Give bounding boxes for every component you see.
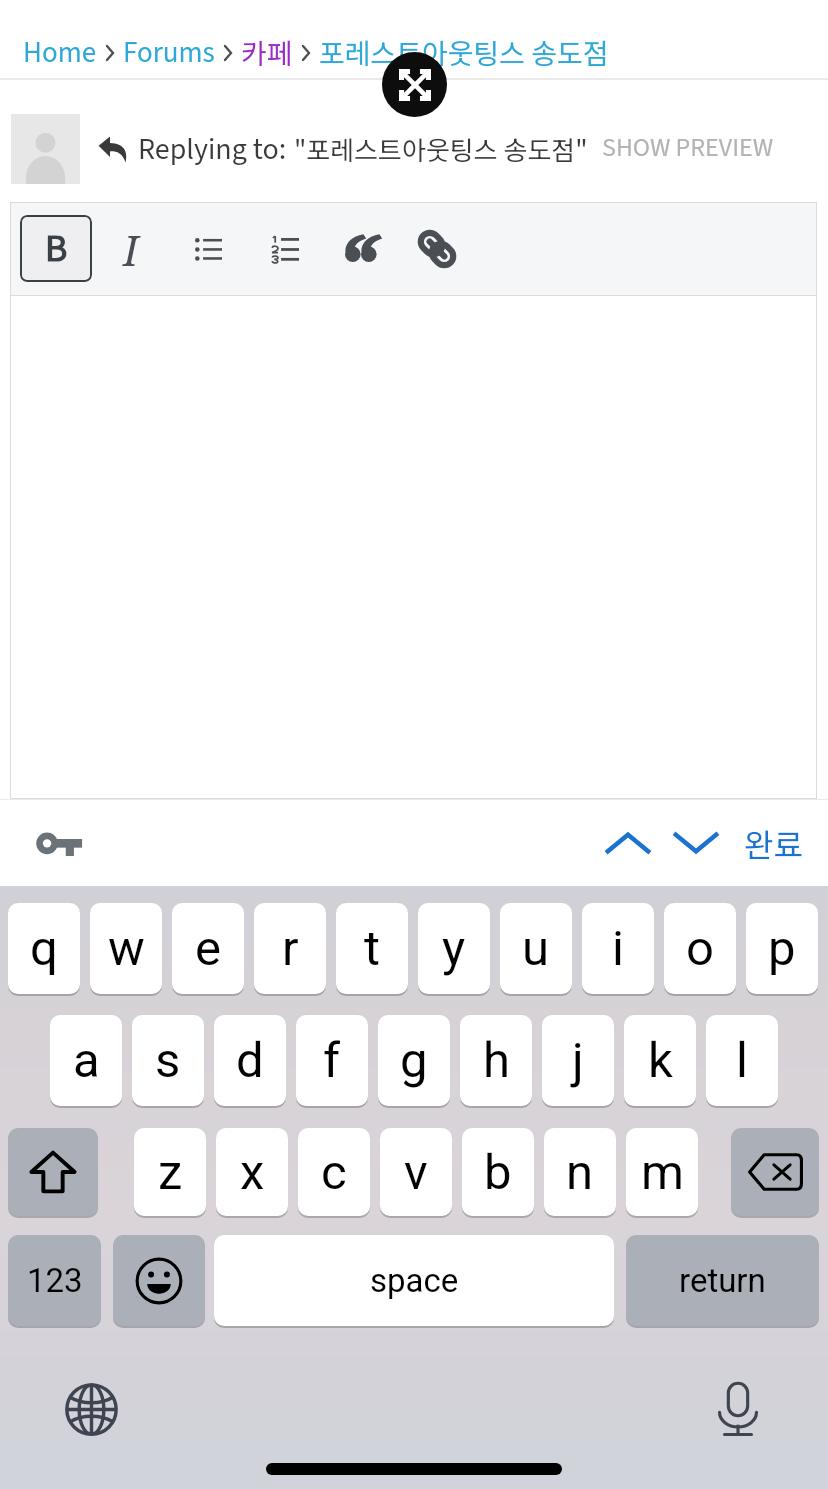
button[interactable]: Change language bbox=[55, 1373, 127, 1445]
button[interactable]: r bbox=[254, 903, 326, 994]
button[interactable]: m bbox=[626, 1128, 698, 1216]
button[interactable]: l bbox=[706, 1015, 778, 1106]
button[interactable]: 카페 bbox=[241, 28, 293, 77]
button[interactable]: k bbox=[624, 1015, 696, 1106]
button[interactable]: Next field bbox=[664, 811, 728, 875]
staticText: return bbox=[679, 1261, 766, 1300]
staticText: h bbox=[483, 1032, 510, 1089]
button[interactable]: Home bbox=[23, 28, 97, 77]
button[interactable]: Passwords bbox=[25, 810, 95, 880]
button[interactable]: q bbox=[8, 903, 80, 994]
staticText: f bbox=[323, 1032, 341, 1089]
button[interactable] bbox=[169, 209, 247, 289]
button[interactable]: s bbox=[132, 1015, 204, 1106]
staticText: e bbox=[195, 920, 221, 977]
button[interactable]: Emoji bbox=[113, 1235, 205, 1326]
staticText: 카페 bbox=[241, 32, 293, 73]
button[interactable]: Backspace bbox=[731, 1128, 819, 1216]
staticText: B bbox=[45, 222, 68, 276]
staticText: y bbox=[442, 920, 466, 977]
button[interactable]: 완료 bbox=[744, 812, 803, 874]
button[interactable]: b bbox=[462, 1128, 534, 1216]
staticText: I bbox=[123, 221, 139, 278]
button[interactable]: t bbox=[336, 903, 408, 994]
button[interactable]: z bbox=[134, 1128, 206, 1216]
staticText: c bbox=[321, 1144, 347, 1201]
button[interactable]: d bbox=[214, 1015, 286, 1106]
button[interactable]: space bbox=[214, 1235, 614, 1326]
button[interactable]: g bbox=[378, 1015, 450, 1106]
staticText: space bbox=[370, 1261, 459, 1300]
staticText: Forums bbox=[123, 32, 215, 73]
staticText: w bbox=[108, 920, 145, 977]
button[interactable]: return bbox=[626, 1235, 819, 1326]
staticText: v bbox=[404, 1144, 428, 1201]
button[interactable]: a bbox=[50, 1015, 122, 1106]
staticText: Home bbox=[23, 32, 97, 73]
button[interactable]: Expand editor bbox=[382, 52, 447, 117]
staticText: g bbox=[400, 1032, 428, 1089]
button[interactable]: Previous field bbox=[596, 811, 660, 875]
staticText: q bbox=[30, 920, 58, 977]
button[interactable]: Shift bbox=[8, 1128, 98, 1216]
staticText: k bbox=[648, 1032, 673, 1089]
button[interactable]: 포레스트아웃팅스 송도점 bbox=[319, 28, 609, 77]
button[interactable]: Forums bbox=[123, 28, 215, 77]
button[interactable]: 123 bbox=[8, 1235, 101, 1326]
staticText: u bbox=[522, 920, 550, 977]
staticText: p bbox=[768, 920, 796, 977]
button[interactable]: u bbox=[500, 903, 572, 994]
button[interactable]: SHOW PREVIEW bbox=[602, 125, 774, 174]
staticText: n bbox=[566, 1144, 594, 1201]
button[interactable]: w bbox=[90, 903, 162, 994]
staticText: o bbox=[686, 920, 714, 977]
staticText: b bbox=[484, 1144, 512, 1201]
staticText: i bbox=[612, 920, 624, 977]
button[interactable]: e bbox=[172, 903, 244, 994]
staticText: 완료 bbox=[744, 820, 803, 866]
button[interactable]: j bbox=[542, 1015, 614, 1106]
button[interactable]: B bbox=[20, 215, 92, 282]
button[interactable]: o bbox=[664, 903, 736, 994]
staticText: a bbox=[73, 1032, 100, 1089]
staticText: d bbox=[236, 1032, 264, 1089]
staticText: z bbox=[158, 1144, 183, 1201]
button[interactable]: Dictation bbox=[702, 1373, 774, 1445]
button[interactable]: I bbox=[92, 209, 169, 289]
button[interactable]: i bbox=[582, 903, 654, 994]
staticText: 123 bbox=[27, 1261, 83, 1300]
button[interactable] bbox=[247, 209, 323, 289]
staticText: SHOW PREVIEW bbox=[602, 129, 774, 166]
button[interactable] bbox=[399, 209, 475, 289]
staticText: Replying to: bbox=[138, 128, 287, 171]
button[interactable] bbox=[323, 209, 399, 289]
button[interactable]: c bbox=[298, 1128, 370, 1216]
button[interactable]: p bbox=[746, 903, 818, 994]
button[interactable]: h bbox=[460, 1015, 532, 1106]
button[interactable]: v bbox=[380, 1128, 452, 1216]
staticText: r bbox=[282, 920, 299, 977]
staticText: "포레스트아웃팅스 송도점" bbox=[294, 130, 588, 168]
button[interactable]: x bbox=[216, 1128, 288, 1216]
staticText: x bbox=[240, 1144, 265, 1201]
staticText: t bbox=[364, 920, 381, 977]
staticText: j bbox=[572, 1032, 584, 1089]
button[interactable]: f bbox=[296, 1015, 368, 1106]
staticText: m bbox=[641, 1144, 684, 1201]
staticText: s bbox=[155, 1032, 181, 1089]
staticText: l bbox=[736, 1032, 748, 1089]
staticText: 포레스트아웃팅스 송도점 bbox=[319, 32, 609, 73]
button[interactable]: y bbox=[418, 903, 490, 994]
button[interactable]: n bbox=[544, 1128, 616, 1216]
